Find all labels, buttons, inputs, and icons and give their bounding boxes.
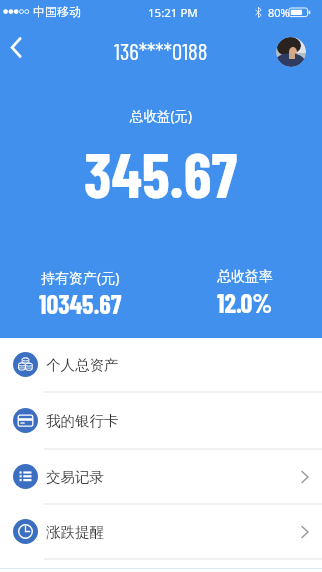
staticText: 中国移动: [33, 4, 81, 19]
staticText: 15:21 PM: [148, 5, 198, 21]
staticText: 136****0188: [114, 37, 208, 65]
staticText: 总收益率: [217, 268, 273, 286]
staticText: 我的银行卡: [46, 412, 119, 430]
staticText: 个人总资产: [46, 356, 119, 374]
staticText: 345.67: [84, 135, 238, 211]
button[interactable]: 我的银行卡: [0, 393, 322, 448]
button[interactable]: [10, 37, 22, 58]
button[interactable]: 交易记录: [0, 450, 322, 503]
staticText: 交易记录: [46, 468, 104, 486]
staticText: 80%: [268, 5, 290, 20]
button[interactable]: 涨跌提醒: [0, 505, 322, 558]
button[interactable]: 个人总资产: [0, 338, 322, 391]
staticText: 10345.67: [39, 288, 122, 319]
button[interactable]: [276, 37, 306, 67]
staticText: 涨跌提醒: [46, 523, 104, 541]
staticText: 12.0%: [217, 287, 273, 318]
staticText: 持有资产(元): [41, 268, 120, 287]
staticText: 总收益(元): [130, 107, 193, 125]
